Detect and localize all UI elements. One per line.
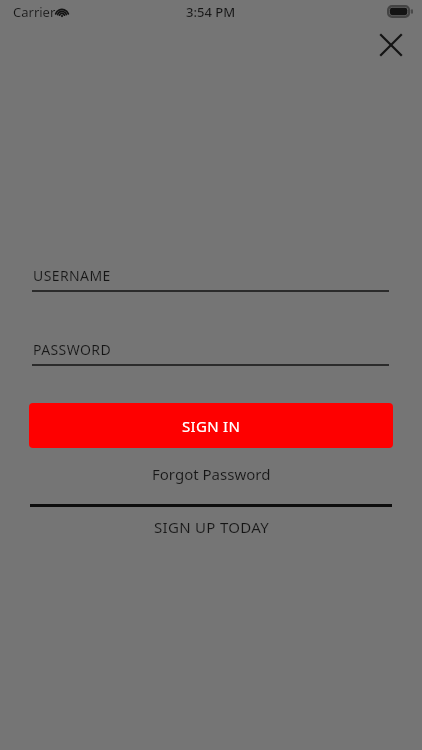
button[interactable]: SIGN IN <box>29 403 393 448</box>
button[interactable]: Close <box>370 24 411 65</box>
button[interactable]: Forgot Password <box>0 457 422 491</box>
staticText: Forgot Password <box>152 464 271 484</box>
staticText: Carrier <box>13 3 56 21</box>
button[interactable]: PASSWORD <box>0 340 422 366</box>
button[interactable]: USERNAME <box>0 266 422 292</box>
staticText: SIGN UP TODAY <box>154 517 269 537</box>
button[interactable]: SIGN UP TODAY <box>0 513 422 541</box>
staticText: USERNAME <box>33 266 111 285</box>
staticText: PASSWORD <box>33 340 112 359</box>
staticText: SIGN IN <box>182 416 241 436</box>
staticText: 3:54 PM <box>186 3 236 21</box>
